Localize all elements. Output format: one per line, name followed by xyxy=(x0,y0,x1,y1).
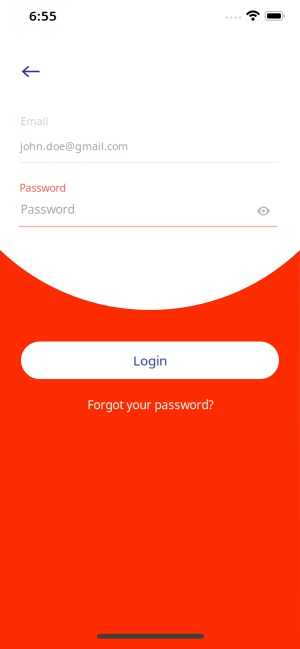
staticText: Email xyxy=(20,114,48,128)
button[interactable]: Login xyxy=(21,342,279,379)
button[interactable]: Forgot your password? xyxy=(83,392,217,416)
staticText: Forgot your password? xyxy=(87,396,213,412)
button[interactable]: Show password xyxy=(251,201,276,221)
staticText: Password xyxy=(19,180,66,195)
button[interactable]: Back xyxy=(14,58,48,85)
staticText: john.doe@gmail.com xyxy=(20,139,128,153)
staticText: Login xyxy=(133,351,167,369)
staticText: 6:55 xyxy=(29,7,57,24)
staticText: Password xyxy=(20,201,74,217)
